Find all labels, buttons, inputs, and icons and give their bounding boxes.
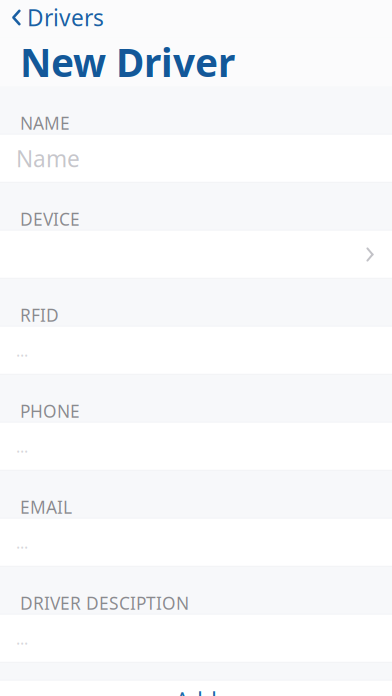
staticText: New Driver	[20, 36, 235, 88]
staticText: NAME	[20, 111, 70, 134]
staticText: Add	[175, 685, 217, 696]
staticText: Drivers	[27, 2, 104, 32]
staticText: ...	[16, 628, 28, 649]
staticText: ...	[16, 436, 28, 457]
button[interactable]: Add	[0, 680, 392, 696]
staticText: Name	[16, 143, 80, 173]
button[interactable]: Drivers	[0, 0, 114, 37]
staticText: EMAIL	[20, 495, 72, 518]
staticText: RFID	[20, 303, 59, 326]
staticText: ...	[16, 532, 28, 553]
staticText: PHONE	[20, 399, 80, 422]
staticText: DEVICE	[20, 207, 80, 230]
staticText: DRIVER DESCIPTION	[20, 591, 189, 614]
staticText: ...	[16, 340, 28, 361]
